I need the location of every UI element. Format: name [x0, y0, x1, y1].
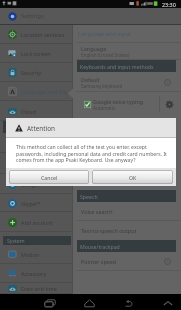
button[interactable]: Motion — [0, 245, 72, 264]
staticText: Settings — [21, 12, 44, 20]
staticText: Cancel — [41, 174, 58, 181]
staticText: 23:30 — [162, 1, 176, 8]
staticText: Dropbox — [21, 160, 43, 167]
staticText: Security — [21, 69, 42, 76]
other: Open — [164, 258, 171, 265]
staticText: Voice search — [81, 208, 113, 215]
staticText: Keyboards and input methods — [80, 63, 154, 70]
button[interactable]: Date and time — [0, 283, 72, 294]
button[interactable]: Voice search — [73, 202, 181, 221]
staticText: This method can collect all of the text … — [16, 144, 167, 163]
button[interactable]: Hide keyboard — [163, 300, 173, 308]
staticText: Language and input — [78, 30, 131, 38]
button[interactable]: Security — [0, 63, 72, 82]
staticText: Lock screen — [21, 50, 51, 57]
staticText: Attention — [27, 124, 56, 133]
staticText: Date and time — [21, 285, 57, 292]
staticText: Accessory — [21, 270, 47, 277]
staticText: Cloud — [21, 108, 36, 115]
staticText: Samsung keyboard — [81, 83, 123, 89]
staticText: Motion — [21, 251, 40, 258]
staticText: Default — [81, 76, 100, 83]
button[interactable]: Skype™ — [0, 194, 72, 212]
staticText: Language — [81, 45, 107, 52]
staticText: Google — [21, 181, 40, 188]
button[interactable]: Settings — [165, 100, 174, 109]
button[interactable]: Language and input — [0, 82, 72, 101]
button[interactable]: Dropbox — [0, 153, 72, 174]
button[interactable]: Add account — [0, 212, 72, 232]
button[interactable]: Cancel — [9, 170, 89, 184]
staticText: System — [7, 237, 25, 244]
button[interactable]: Location services — [0, 25, 72, 44]
staticText: Speech — [80, 193, 98, 200]
staticText: Pointer speed — [81, 258, 117, 265]
staticText: Mouse/trackpad — [80, 243, 120, 250]
button[interactable]: Text-to-speech output — [73, 221, 181, 240]
button[interactable]: Recent apps — [44, 299, 56, 308]
button[interactable]: Lock screen — [0, 44, 72, 63]
staticText: Samsung account — [21, 140, 67, 147]
button[interactable]: Back — [124, 299, 134, 308]
staticText: Google voice typing — [93, 98, 144, 105]
staticText: English (United States) — [81, 52, 130, 58]
button[interactable]: Google voice typing — [73, 92, 181, 116]
button[interactable]: Accessory — [0, 264, 72, 283]
staticText: Add account — [21, 219, 53, 226]
button[interactable]: Cloud — [0, 101, 72, 121]
staticText: Text-to-speech output — [81, 227, 137, 234]
staticText: Automatic — [93, 105, 116, 111]
button[interactable]: Samsung account — [0, 133, 72, 153]
button[interactable]: Default — [73, 72, 181, 92]
button[interactable]: Pointer speed — [73, 252, 181, 271]
button[interactable]: Home — [84, 299, 95, 308]
staticText: Location services — [21, 31, 65, 38]
staticText: Skype™ — [21, 200, 41, 207]
staticText: OK — [129, 174, 137, 181]
staticText: Language and input — [21, 88, 72, 95]
other: Open — [164, 79, 171, 86]
button[interactable]: Language — [73, 43, 181, 60]
staticText: Accounts — [7, 124, 30, 131]
button[interactable]: Google — [0, 174, 72, 194]
button[interactable]: OK — [92, 170, 173, 184]
